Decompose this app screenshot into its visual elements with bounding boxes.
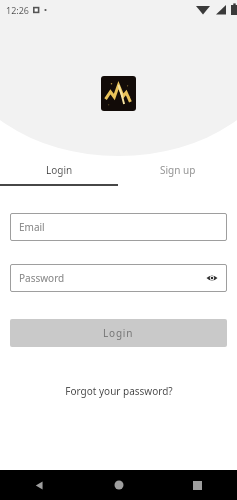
staticText: Email [19,220,45,234]
button[interactable]: Password [10,264,227,292]
button[interactable]: Back [0,470,79,500]
button[interactable]: Login [0,156,118,184]
staticText: Password [19,271,65,285]
button[interactable]: Home [79,470,158,500]
staticText: Sign up [160,163,196,177]
staticText: 12:26 [6,4,30,16]
button[interactable]: Sign up [118,156,237,184]
button[interactable]: Forgot your password? [57,380,181,402]
button[interactable]: Recent apps [158,470,237,500]
staticText: Login [46,163,73,177]
button[interactable]: Login [10,319,227,347]
button[interactable]: Show password [205,271,219,285]
button[interactable]: Email [10,213,227,241]
staticText: Forgot your password? [65,384,173,398]
staticText: Login [103,326,134,340]
